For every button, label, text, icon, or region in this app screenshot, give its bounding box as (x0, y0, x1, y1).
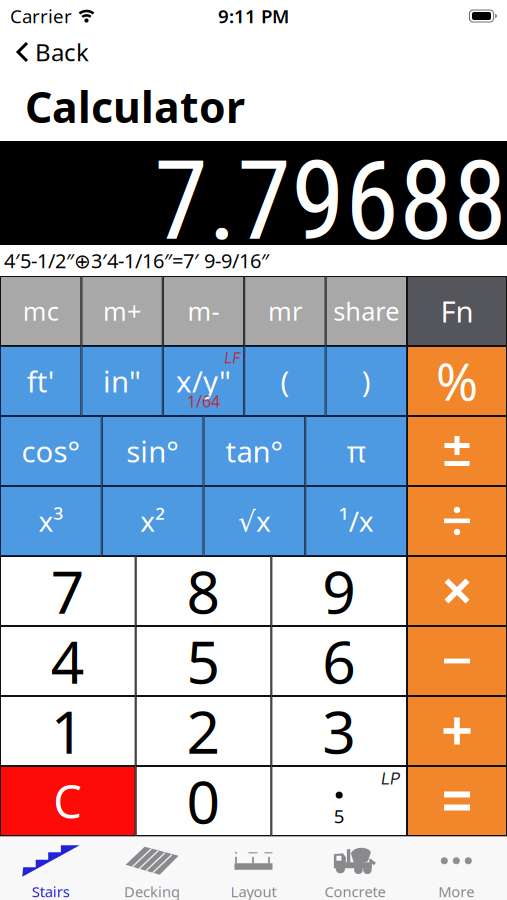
button[interactable]: 6 (271, 626, 407, 696)
staticText: 1/64 (187, 391, 220, 412)
button[interactable]: m+ (81, 276, 163, 346)
button[interactable]: plusminus (407, 416, 507, 486)
staticText: % (436, 347, 478, 415)
button[interactable]: Concrete (304, 837, 406, 900)
button[interactable]: equals (407, 766, 507, 836)
staticText: Decking (124, 882, 180, 900)
button[interactable]: 8 (136, 556, 271, 626)
staticText: 7 (51, 552, 85, 630)
staticText: Fn (440, 291, 473, 330)
staticText: 6 (322, 622, 356, 700)
button[interactable]: 3 (271, 696, 407, 766)
button[interactable]: √x (203, 486, 305, 556)
button[interactable]: ¹/x (305, 486, 407, 556)
button[interactable]: 5 (136, 626, 271, 696)
button[interactable]: divide (407, 486, 507, 556)
button[interactable]: 7 (0, 556, 136, 626)
staticText: 8 (186, 552, 220, 630)
staticText: 4 (51, 622, 85, 700)
staticText: ft' (27, 361, 55, 400)
button[interactable]: Decking (101, 837, 203, 900)
staticText: Concrete (324, 882, 385, 900)
staticText: 2 (186, 692, 220, 770)
staticText: ) (362, 361, 371, 400)
button[interactable]: in" (81, 346, 163, 416)
button[interactable]: π (305, 416, 407, 486)
button[interactable]: Fn (407, 276, 507, 346)
staticText: m- (187, 294, 219, 328)
button[interactable]: 4 (0, 626, 136, 696)
staticText: LF (224, 349, 241, 367)
button[interactable]: C (0, 766, 136, 836)
button[interactable]: 2 (136, 696, 271, 766)
button[interactable]: Stairs (0, 837, 101, 900)
staticText: mc (23, 294, 59, 328)
button[interactable]: tan° (203, 416, 305, 486)
button[interactable]: x/y" (163, 346, 244, 416)
button[interactable]: Layout (203, 837, 304, 900)
staticText: 0 (186, 762, 220, 840)
staticText: 1 (51, 692, 85, 770)
button[interactable]: ft' (0, 346, 81, 416)
staticText: mr (268, 294, 302, 328)
staticText: Back (35, 36, 89, 68)
staticText: x³ (38, 502, 63, 540)
staticText: LP (381, 769, 400, 788)
button[interactable]: sin° (102, 416, 204, 486)
button[interactable]: times (407, 556, 507, 626)
staticText: Layout (230, 882, 276, 900)
button[interactable]: minus (407, 626, 507, 696)
button[interactable]: 0 (136, 766, 271, 836)
button[interactable]: mr (244, 276, 326, 346)
staticText: 5 (186, 622, 220, 700)
button[interactable]: ( (244, 346, 326, 416)
button[interactable]: x³ (0, 486, 102, 556)
staticText: 9 (322, 552, 356, 630)
button[interactable]: Back (0, 36, 89, 68)
staticText: x² (140, 502, 165, 540)
staticText: cos° (21, 431, 80, 470)
staticText: 7.79688 (154, 137, 507, 265)
button[interactable]: share (326, 276, 407, 346)
staticText: tan° (225, 431, 283, 470)
button[interactable]: 1 (0, 696, 136, 766)
staticText: 5 (334, 804, 345, 828)
button[interactable]: m- (163, 276, 244, 346)
staticText: ( (280, 361, 289, 400)
staticText: √x (238, 502, 271, 540)
button[interactable]: cos° (0, 416, 102, 486)
staticText: 4′5-1/2″⊕3′4-1/16″=7′ 9-9/16″ (4, 247, 269, 274)
staticText: 3 (322, 692, 356, 770)
staticText: share (333, 294, 399, 328)
staticText: ¹/x (339, 502, 374, 540)
button[interactable]: 5 (271, 766, 407, 836)
button[interactable]: x² (102, 486, 204, 556)
staticText: π (347, 431, 366, 470)
button[interactable]: % (407, 346, 507, 416)
staticText: 9:11 PM (218, 4, 289, 28)
staticText: in" (103, 361, 141, 400)
staticText: Calculator (25, 78, 245, 135)
staticText: Carrier (10, 4, 72, 28)
staticText: m+ (103, 294, 141, 328)
button[interactable]: 9 (271, 556, 407, 626)
staticText: More (438, 882, 474, 900)
button[interactable]: mc (0, 276, 81, 346)
button[interactable]: plus (407, 696, 507, 766)
staticText: Stairs (32, 882, 70, 900)
staticText: sin° (126, 431, 179, 470)
button[interactable]: More (406, 837, 507, 900)
button[interactable]: ) (326, 346, 407, 416)
staticText: C (53, 771, 82, 831)
staticText: x/y" (176, 361, 231, 400)
